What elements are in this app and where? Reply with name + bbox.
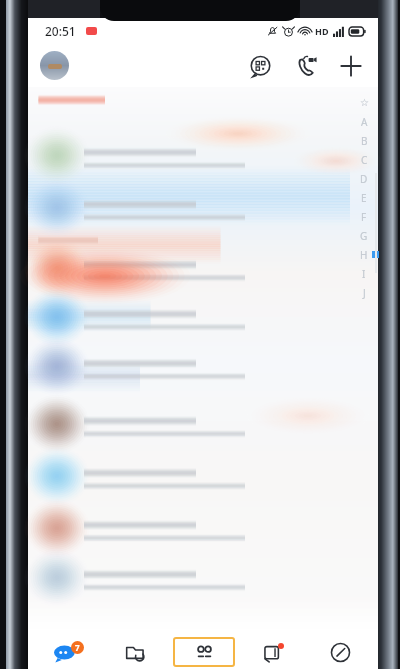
button[interactable]: Profile [40,51,69,80]
staticText: C [361,153,368,167]
staticText: E [361,191,367,205]
staticText: G [360,229,368,243]
staticText: 20:51 [45,23,76,39]
button[interactable]: Contacts [170,635,238,669]
button[interactable]: Alphabet index [357,93,371,302]
button[interactable]: Moments [238,635,306,669]
button[interactable]: Messages [32,635,101,669]
staticText: ☆ [360,97,369,109]
button[interactable]: Discover [306,635,374,669]
staticText: I [362,267,366,281]
button[interactable]: Files [101,635,170,669]
staticText: D [360,172,368,186]
staticText: J [363,286,366,300]
button[interactable]: Calls [290,50,322,82]
staticText: A [361,115,368,129]
staticText: 7 [75,642,80,653]
staticText: F [361,210,367,224]
button[interactable]: Add [335,50,367,82]
staticText: H [360,248,368,262]
staticText: B [361,134,368,148]
button[interactable]: Scan [244,50,276,82]
staticText: HD [315,25,329,37]
